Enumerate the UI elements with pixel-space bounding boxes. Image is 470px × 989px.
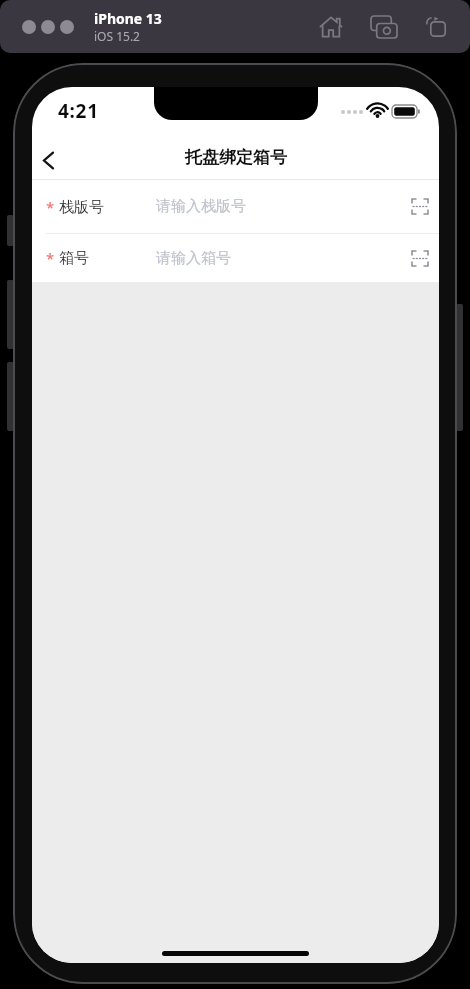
staticText: iPhone 13	[94, 9, 162, 28]
staticText: 4:21	[58, 98, 99, 124]
button[interactable]: *	[46, 180, 428, 233]
staticText: 请输入栈版号	[156, 197, 246, 216]
staticText: 栈版号	[59, 198, 104, 217]
button[interactable]	[371, 16, 397, 38]
staticText: 请输入箱号	[156, 249, 231, 268]
staticText: 箱号	[59, 249, 89, 268]
button[interactable]	[34, 146, 62, 174]
staticText: *	[46, 248, 55, 268]
staticText: iOS 15.2	[94, 28, 140, 44]
button[interactable]	[320, 16, 342, 38]
button[interactable]	[426, 17, 446, 37]
staticText: 托盘绑定箱号	[185, 147, 287, 168]
staticText: *	[46, 197, 55, 217]
button[interactable]: *	[46, 234, 428, 282]
